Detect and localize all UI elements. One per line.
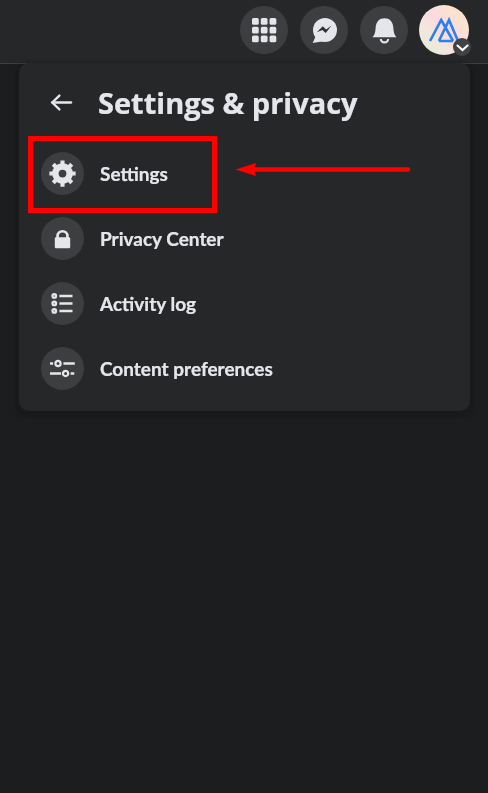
staticText: Privacy Center [100, 227, 224, 250]
button[interactable]: Notifications [360, 6, 408, 54]
button[interactable]: Settings [41, 141, 458, 206]
staticText: Activity log [100, 292, 197, 315]
button[interactable]: Content preferences [41, 336, 458, 401]
button[interactable]: Your profile [419, 5, 469, 55]
button[interactable]: Back [40, 81, 82, 123]
button[interactable]: Activity log [41, 271, 458, 336]
button[interactable]: Messenger [300, 6, 348, 54]
staticText: Content preferences [100, 357, 273, 380]
staticText: Settings [100, 162, 168, 185]
button[interactable]: Account menu [453, 38, 471, 56]
button[interactable]: Privacy Center [41, 206, 458, 271]
button[interactable]: Menu [240, 6, 288, 54]
staticText: Settings & privacy [98, 83, 358, 122]
